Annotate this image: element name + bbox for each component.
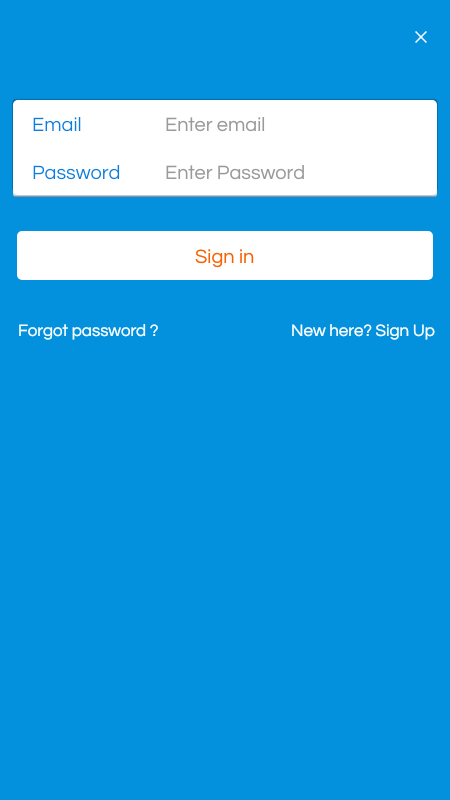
staticText: Forgot password ?	[18, 322, 159, 340]
button[interactable]: Sign in	[17, 231, 433, 280]
staticText: Password	[32, 163, 165, 184]
staticText: Enter Password	[165, 163, 306, 184]
staticText: Email	[32, 115, 165, 136]
staticText: Enter email	[165, 115, 266, 136]
button[interactable]: Email	[13, 100, 437, 151]
staticText: Sign in	[195, 247, 255, 268]
button[interactable]: Close	[401, 17, 441, 57]
button[interactable]: Forgot password ?	[18, 322, 159, 340]
button[interactable]: New here? Sign Up	[291, 322, 435, 340]
staticText: New here? Sign Up	[291, 322, 435, 340]
button[interactable]: Password	[13, 151, 437, 195]
